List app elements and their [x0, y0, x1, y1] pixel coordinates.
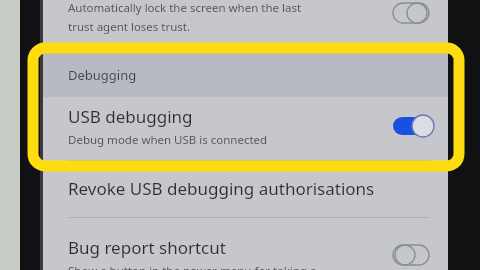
staticText: Show a button in the power menu for taki…: [68, 263, 317, 270]
button[interactable]: Automatic lock toggle, off: [392, 0, 434, 26]
button[interactable]: Automatically lock the screen when the l…: [43, 0, 448, 46]
staticText: USB debugging: [68, 105, 193, 128]
button[interactable]: USB debugging: [43, 97, 448, 155]
staticText: Bug report shortcut: [68, 236, 226, 259]
button[interactable]: Revoke USB debugging authorisations: [43, 165, 448, 212]
button[interactable]: USB debugging toggle, on: [392, 113, 434, 139]
button[interactable]: Bug report shortcut toggle, off: [392, 242, 434, 268]
staticText: Debugging: [68, 66, 137, 84]
staticText: Automatically lock the screen when the l…: [68, 0, 302, 16]
staticText: Debug mode when USB is connected: [68, 132, 268, 148]
button[interactable]: Bug report shortcut: [43, 222, 448, 270]
staticText: trust agent loses trust.: [68, 19, 191, 35]
staticText: Revoke USB debugging authorisations: [68, 177, 375, 200]
